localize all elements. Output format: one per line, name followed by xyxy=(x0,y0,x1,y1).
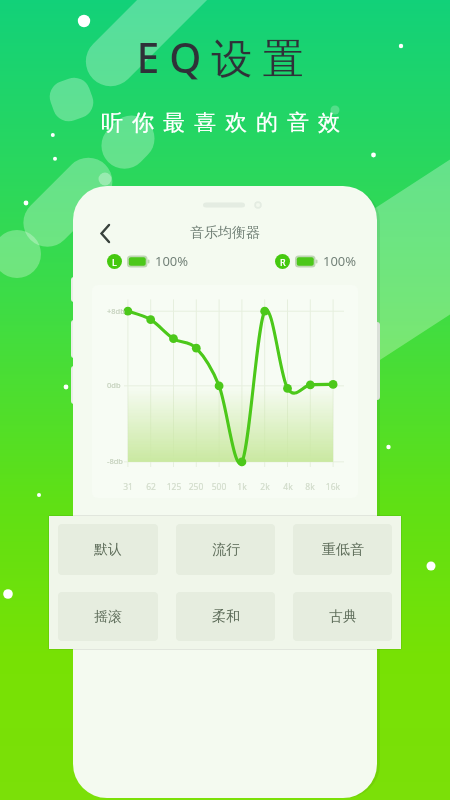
staticText: 听你最喜欢的音效 xyxy=(0,109,450,137)
staticText: -8db xyxy=(107,456,123,466)
staticText: 流行 xyxy=(212,541,240,559)
button[interactable]: 默认 xyxy=(58,524,158,575)
staticText: 100% xyxy=(323,252,357,270)
staticText: 8k xyxy=(298,481,322,493)
staticText: 2k xyxy=(253,481,277,493)
staticText: 100% xyxy=(155,252,189,270)
button[interactable]: 流行 xyxy=(176,524,275,575)
staticText: 古典 xyxy=(329,608,357,626)
staticText: 0db xyxy=(107,380,121,390)
button[interactable]: 重低音 xyxy=(293,524,392,575)
staticText: 音乐均衡器 xyxy=(73,224,377,242)
button[interactable]: 柔和 xyxy=(176,592,275,641)
staticText: 125 xyxy=(162,481,186,493)
staticText: 250 xyxy=(184,481,208,493)
staticText: 柔和 xyxy=(212,608,240,626)
staticText: 500 xyxy=(207,481,231,493)
staticText: +8db xyxy=(107,306,125,316)
staticText: 62 xyxy=(139,481,163,493)
staticText: 16k xyxy=(321,481,345,493)
staticText: 重低音 xyxy=(322,541,364,559)
button[interactable]: 古典 xyxy=(293,592,392,641)
staticText: EQ设置 xyxy=(0,29,450,85)
staticText: 4k xyxy=(276,481,300,493)
staticText: 31 xyxy=(116,481,140,493)
button[interactable]: Back xyxy=(94,220,118,244)
staticText: 默认 xyxy=(94,541,122,559)
button[interactable]: 摇滚 xyxy=(58,592,158,641)
staticText: 1k xyxy=(230,481,254,493)
staticText: R xyxy=(280,256,286,268)
staticText: L xyxy=(112,256,117,268)
staticText: 摇滚 xyxy=(94,608,122,626)
